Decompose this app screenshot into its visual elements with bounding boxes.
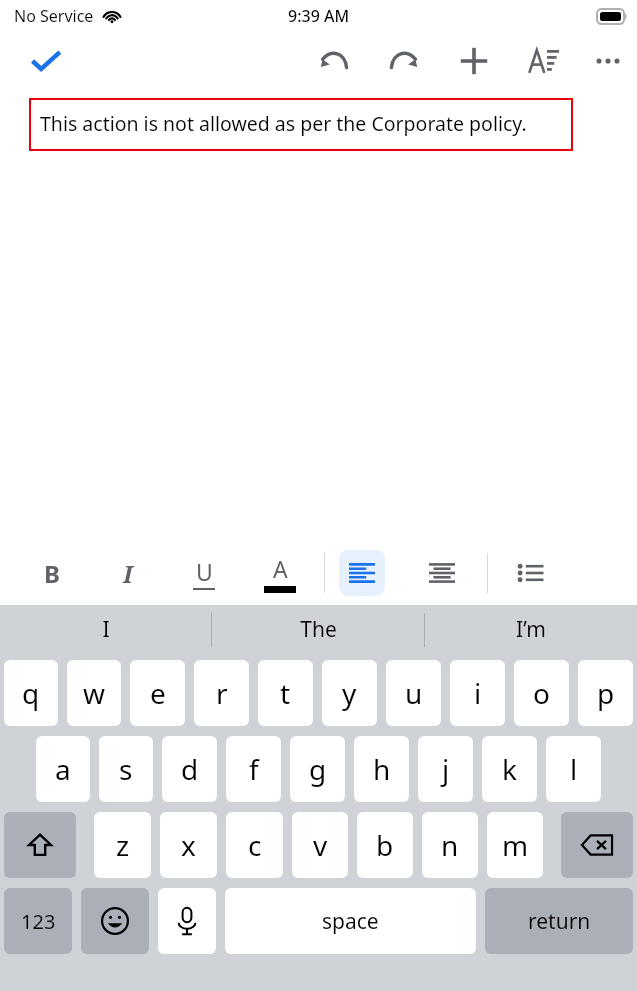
staticText: f: [249, 750, 259, 788]
button[interactable]: v: [292, 812, 348, 878]
staticText: l: [570, 750, 578, 788]
button[interactable]: d: [162, 736, 217, 802]
button[interactable]: More options: [585, 38, 631, 84]
button[interactable]: l: [546, 736, 601, 802]
staticText: y: [342, 674, 357, 712]
staticText: q: [22, 674, 40, 712]
button[interactable]: Done: [22, 37, 70, 85]
staticText: g: [309, 750, 327, 788]
button[interactable]: Emoji: [81, 888, 149, 954]
staticText: o: [533, 674, 550, 712]
staticText: e: [150, 674, 166, 712]
staticText: t: [280, 674, 291, 712]
button[interactable]: x: [160, 812, 217, 878]
staticText: space: [322, 907, 379, 936]
staticText: I: [102, 615, 110, 644]
button[interactable]: j: [418, 736, 473, 802]
button[interactable]: y: [322, 660, 377, 726]
button[interactable]: z: [94, 812, 151, 878]
staticText: The: [300, 615, 337, 644]
staticText: x: [181, 826, 196, 864]
button[interactable]: Align left: [339, 550, 385, 596]
button[interactable]: Undo: [311, 38, 357, 84]
button[interactable]: u: [386, 660, 441, 726]
button[interactable]: k: [482, 736, 537, 802]
button[interactable]: t: [258, 660, 313, 726]
button[interactable]: return: [485, 888, 633, 954]
staticText: I’m: [516, 615, 546, 644]
button[interactable]: Shift: [4, 812, 76, 878]
staticText: I: [123, 557, 133, 590]
staticText: h: [373, 750, 391, 788]
staticText: v: [313, 826, 328, 864]
staticText: a: [55, 750, 71, 788]
staticText: This action is not allowed as per the Co…: [40, 110, 527, 137]
button[interactable]: This action is not allowed as per the Co…: [29, 98, 573, 151]
button[interactable]: I’m: [425, 605, 637, 654]
button[interactable]: i: [450, 660, 505, 726]
button[interactable]: Bulleted list: [508, 550, 554, 596]
button[interactable]: n: [422, 812, 478, 878]
button[interactable]: I: [0, 605, 211, 654]
button[interactable]: q: [4, 660, 58, 726]
button[interactable]: Align center: [419, 550, 465, 596]
button[interactable]: o: [514, 660, 569, 726]
staticText: c: [248, 826, 262, 864]
button[interactable]: 123: [4, 888, 72, 954]
button[interactable]: Bold: [30, 551, 74, 595]
button[interactable]: h: [354, 736, 409, 802]
button[interactable]: a: [36, 736, 90, 802]
button[interactable]: space: [225, 888, 476, 954]
button[interactable]: w: [67, 660, 121, 726]
button[interactable]: Voice input: [158, 888, 216, 954]
staticText: B: [44, 557, 60, 590]
button[interactable]: p: [578, 660, 633, 726]
staticText: 123: [21, 908, 56, 935]
button[interactable]: r: [194, 660, 249, 726]
button[interactable]: Underline: [182, 551, 226, 595]
button[interactable]: g: [290, 736, 345, 802]
staticText: w: [83, 674, 106, 712]
button[interactable]: Text color: [258, 551, 302, 595]
button[interactable]: Redo: [381, 38, 427, 84]
staticText: b: [376, 826, 394, 864]
button[interactable]: Insert: [451, 38, 497, 84]
staticText: A: [273, 553, 288, 584]
staticText: No Service: [14, 5, 94, 27]
staticText: d: [181, 750, 199, 788]
button[interactable]: e: [130, 660, 185, 726]
staticText: m: [502, 826, 529, 864]
button[interactable]: Italic: [106, 551, 150, 595]
staticText: 9:39 AM: [288, 5, 350, 27]
staticText: p: [597, 674, 615, 712]
staticText: k: [502, 750, 517, 788]
button[interactable]: b: [357, 812, 413, 878]
staticText: j: [442, 750, 450, 788]
button[interactable]: Backspace: [561, 812, 633, 878]
staticText: r: [216, 674, 228, 712]
button[interactable]: m: [487, 812, 543, 878]
button[interactable]: c: [226, 812, 283, 878]
staticText: n: [441, 826, 459, 864]
staticText: u: [405, 674, 423, 712]
button[interactable]: The: [212, 605, 424, 654]
staticText: s: [119, 750, 133, 788]
button[interactable]: s: [99, 736, 153, 802]
staticText: U: [196, 556, 213, 587]
staticText: return: [528, 907, 591, 936]
staticText: z: [116, 826, 130, 864]
button[interactable]: Format: [521, 38, 567, 84]
staticText: i: [474, 674, 482, 712]
button[interactable]: f: [226, 736, 281, 802]
